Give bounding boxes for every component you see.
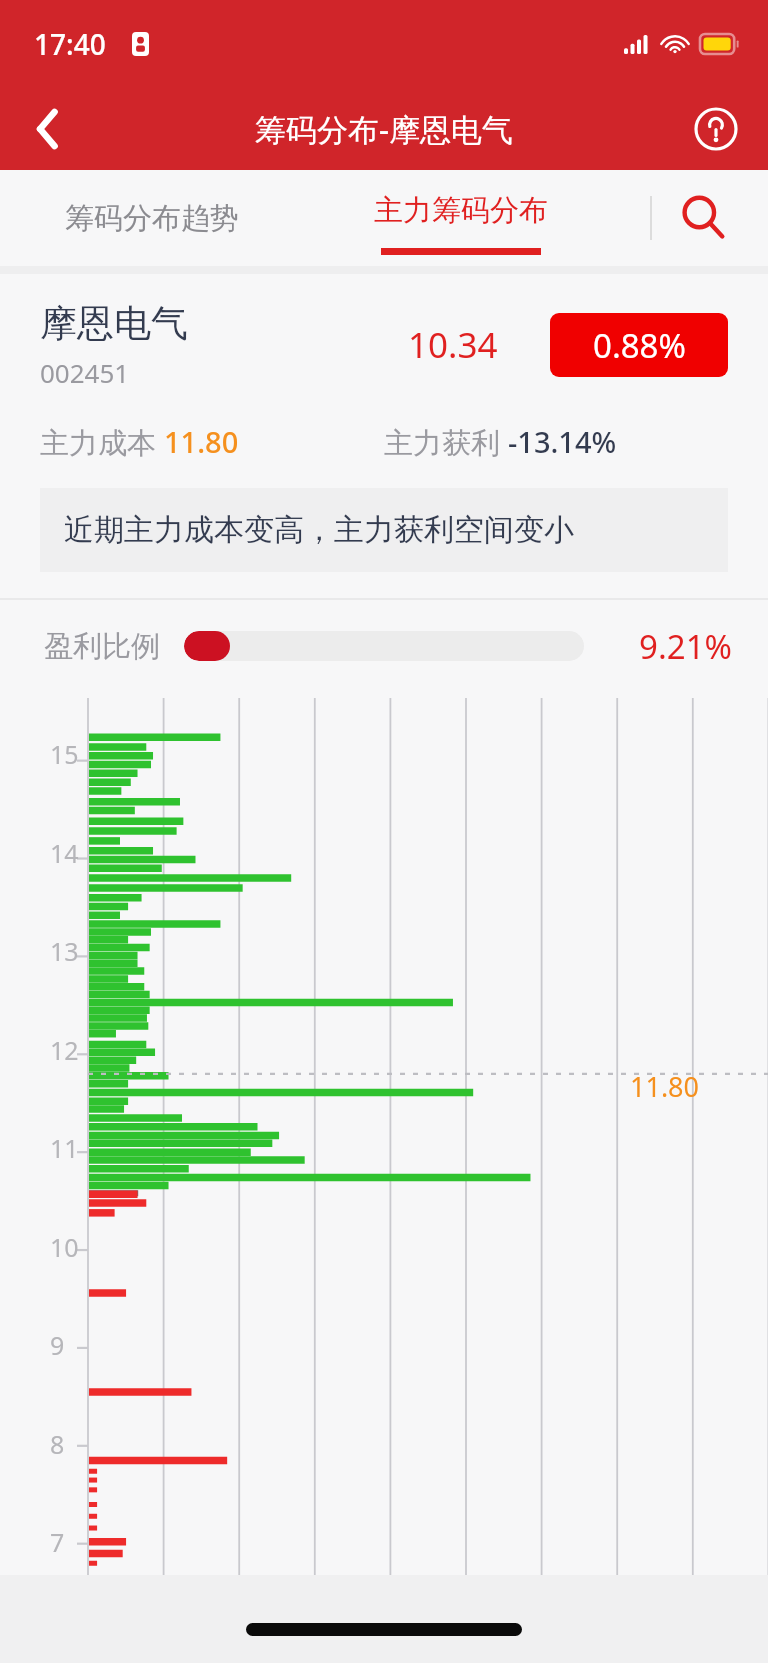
staticText: 9.21% xyxy=(612,624,732,669)
staticText: 11.80 xyxy=(164,422,239,461)
staticText: 12 xyxy=(50,1033,79,1067)
staticText: 002451 xyxy=(40,355,130,390)
staticText: 盈利比例 xyxy=(44,628,160,665)
staticText: 7 xyxy=(50,1525,65,1559)
staticText: 摩恩电气 xyxy=(40,300,188,347)
staticText: 17:40 xyxy=(34,25,106,63)
staticText: 14 xyxy=(50,836,79,870)
button[interactable]: 主力筹码分布 xyxy=(304,170,618,266)
staticText: 近期主力成本变高，主力获利空间变小 xyxy=(64,511,574,549)
staticText: 主力筹码分布 xyxy=(374,192,548,229)
staticText: 11 xyxy=(50,1131,79,1165)
staticText: 筹码分布趋势 xyxy=(65,200,239,237)
button[interactable]: Search xyxy=(668,183,738,253)
staticText: 13 xyxy=(50,934,79,968)
staticText: 0.88% xyxy=(593,323,686,368)
staticText: 9 xyxy=(50,1328,65,1362)
button[interactable]: Help xyxy=(684,97,748,161)
staticText: 主力获利 xyxy=(384,422,508,462)
button[interactable]: Back xyxy=(16,97,80,161)
button[interactable]: 筹码分布趋势 xyxy=(0,170,304,266)
staticText: 11.80 xyxy=(630,1068,700,1105)
staticText: 15 xyxy=(50,737,79,771)
staticText: 筹码分布-摩恩电气 xyxy=(255,108,513,150)
staticText: 10.34 xyxy=(408,321,498,369)
button[interactable]: 0.88% xyxy=(550,313,728,377)
staticText: -13.14% xyxy=(508,422,617,461)
staticText: 10 xyxy=(50,1230,79,1264)
staticText: 主力成本 xyxy=(40,422,164,462)
staticText: 8 xyxy=(50,1427,65,1461)
